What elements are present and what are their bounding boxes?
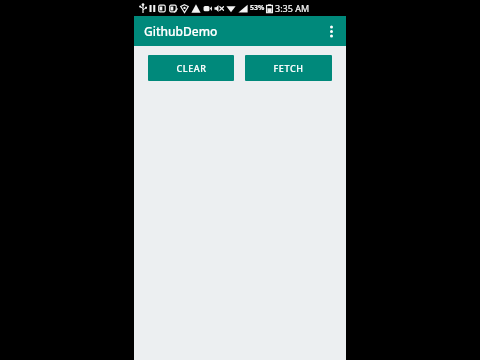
staticText: FETCH (273, 62, 304, 74)
staticText: GithubDemo (144, 23, 218, 39)
staticText: 53% (250, 3, 265, 13)
button[interactable]: FETCH (245, 55, 332, 81)
button[interactable]: CLEAR (148, 55, 234, 81)
staticText: CLEAR (176, 62, 207, 74)
staticText: 3:35 AM (275, 2, 310, 14)
button[interactable]: More options (316, 16, 346, 46)
